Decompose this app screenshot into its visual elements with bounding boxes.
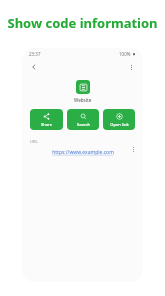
staticText: 100% bbox=[119, 51, 131, 57]
button[interactable]: Back bbox=[28, 61, 40, 73]
staticText: https://www.example.com bbox=[52, 149, 114, 156]
button[interactable]: Share bbox=[30, 109, 63, 130]
button[interactable]: Search bbox=[67, 109, 99, 130]
staticText: URL bbox=[30, 139, 38, 144]
staticText: Open link bbox=[110, 122, 129, 127]
staticText: Share bbox=[41, 122, 52, 127]
staticText: Show code information bbox=[0, 14, 165, 32]
button[interactable]: More options bbox=[125, 61, 137, 73]
button[interactable]: URL bbox=[22, 136, 143, 162]
button[interactable]: Code type bbox=[76, 80, 90, 94]
button[interactable]: URL options bbox=[128, 144, 139, 155]
staticText: Search bbox=[77, 122, 90, 127]
staticText: Website bbox=[74, 97, 92, 103]
staticText: 23:37 bbox=[29, 51, 41, 57]
button[interactable]: Open link bbox=[103, 109, 135, 130]
